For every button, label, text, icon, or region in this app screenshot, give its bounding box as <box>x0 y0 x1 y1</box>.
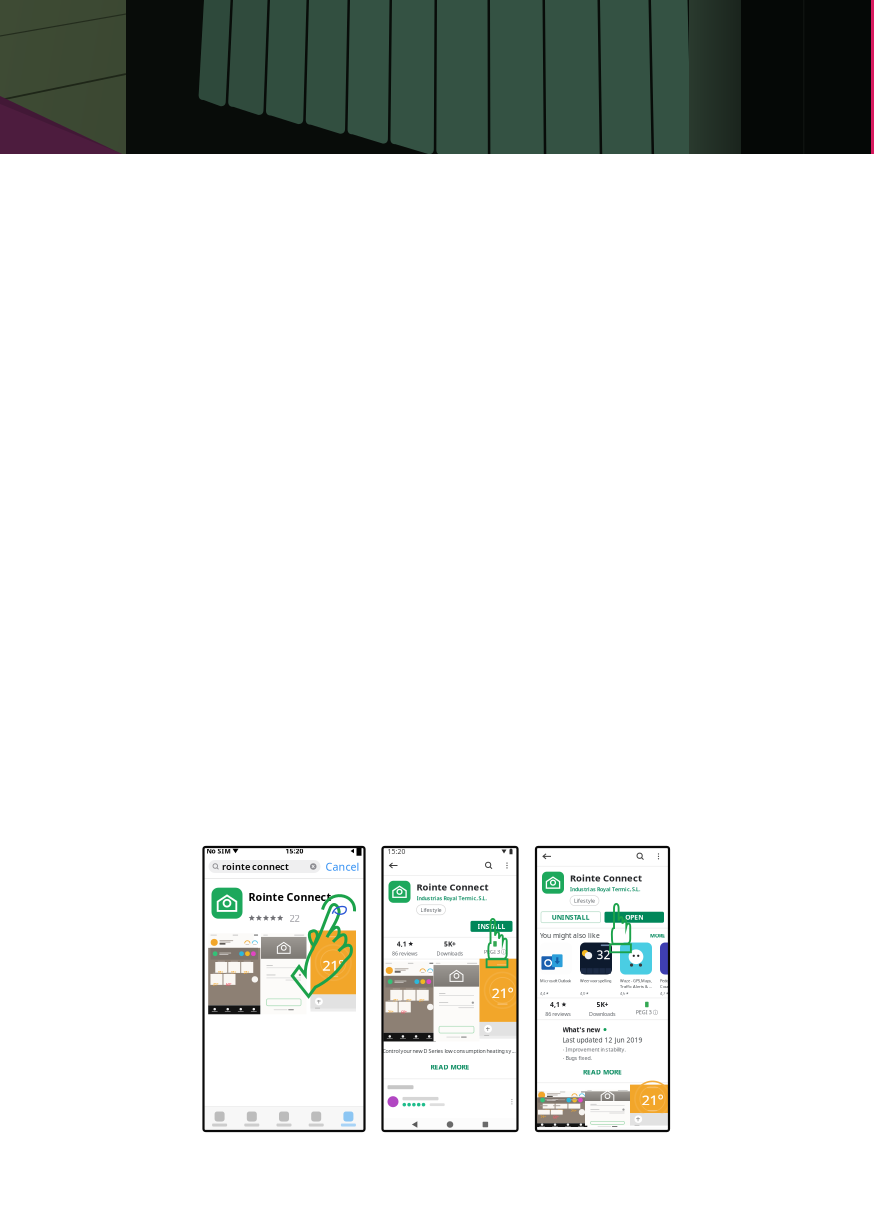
button[interactable]: READ MORE <box>430 1062 469 1071</box>
staticText: 4,7 <box>660 991 665 996</box>
staticText: 4,4 <box>540 991 545 996</box>
staticText: × <box>311 862 315 871</box>
staticText: OPEN <box>625 913 643 922</box>
staticText: 4,0 <box>580 991 585 996</box>
staticText: READ MORE <box>583 1067 622 1076</box>
staticText: 21° <box>571 1108 577 1113</box>
staticText: 86 reviews <box>545 1010 571 1018</box>
staticText: 21° <box>540 1114 546 1119</box>
button[interactable]: Tab 5 <box>332 1107 364 1131</box>
staticText: 21° <box>230 970 236 975</box>
button[interactable]: INSTALL <box>470 921 512 932</box>
staticText: No SIM <box>206 847 230 855</box>
staticText: 86 reviews <box>392 950 418 957</box>
staticText: MORE <box>650 932 665 939</box>
staticText: 21° <box>322 955 344 975</box>
staticText: 21° <box>558 1108 564 1113</box>
staticText: 5K+ <box>596 1000 608 1009</box>
staticText: Rointe Connect <box>570 872 642 884</box>
button[interactable]: OPEN <box>604 912 664 923</box>
staticText: Downloads <box>589 1010 616 1018</box>
staticText: Last updated 12 Jun 2019 <box>562 1035 642 1044</box>
staticText: 15:20 <box>387 847 405 856</box>
staticText: 60° <box>401 1009 407 1014</box>
button[interactable]: Tab 3 <box>268 1107 300 1131</box>
staticText: 21° <box>243 970 249 975</box>
staticText: 5K+ <box>444 939 456 948</box>
staticText: + <box>636 1114 641 1124</box>
staticText: Industrias Royal Termic, S.L. <box>416 895 486 902</box>
staticText: 15:27 <box>541 838 559 847</box>
staticText: 60° <box>226 982 232 987</box>
button[interactable]: More options <box>501 859 512 871</box>
button[interactable]: Tab 2 <box>236 1107 268 1131</box>
staticText: 60° <box>553 1114 559 1119</box>
button[interactable]: Cancel <box>325 859 359 874</box>
staticText: 32 <box>596 947 610 963</box>
button[interactable]: Home <box>599 1130 606 1137</box>
staticText: - Bugs fixed. <box>562 1054 591 1061</box>
staticText: 21° <box>388 1009 394 1014</box>
button[interactable]: Recents <box>635 1131 640 1136</box>
staticText: Microsoft Outlook <box>540 978 571 983</box>
staticText: + <box>485 1023 490 1034</box>
staticText: Coun <box>660 984 669 989</box>
staticText: + <box>316 996 321 1007</box>
staticText: 21° <box>419 997 425 1003</box>
staticText: UNINSTALL <box>552 913 590 922</box>
staticText: PEGI 3 ⓘ <box>636 1009 658 1016</box>
staticText: PEGI 3 ⓘ <box>484 948 506 955</box>
staticText: 4,1 <box>397 939 407 948</box>
button[interactable]: Back <box>412 1121 417 1128</box>
staticText: Rointe Connect <box>248 890 331 904</box>
staticText: 21° <box>491 983 513 1002</box>
staticText: - Improvement in stability. <box>562 1046 625 1053</box>
staticText: 4,1 <box>550 1000 560 1009</box>
staticText: 21° <box>393 997 399 1003</box>
staticText: Pedo <box>660 978 668 983</box>
staticText: rointe connect <box>222 860 289 873</box>
staticText: INSTALL <box>477 922 505 931</box>
staticText: 4,6 <box>620 991 625 996</box>
staticText: 21° <box>641 1090 663 1110</box>
staticText: 21° <box>213 982 219 987</box>
staticText: Lifestyle <box>574 897 595 904</box>
staticText: Weervoorspelling <box>580 978 611 983</box>
button[interactable]: MORE <box>650 932 665 939</box>
staticText: 21° <box>406 997 412 1003</box>
staticText: READ MORE <box>430 1062 469 1071</box>
button[interactable]: Tab 1 <box>203 1107 236 1131</box>
staticText: What's new <box>562 1025 600 1034</box>
button[interactable]: More options <box>653 850 664 862</box>
button[interactable]: Home <box>447 1121 453 1128</box>
button[interactable]: Back <box>387 859 399 871</box>
staticText: Industrias Royal Termic, S.L. <box>570 886 640 893</box>
staticText: You might also like <box>540 931 600 940</box>
staticText: Cancel <box>325 859 359 874</box>
staticText: 15:20 <box>285 847 303 855</box>
button[interactable]: READ MORE <box>583 1067 622 1076</box>
staticText: Traffic Alerts & Li… <box>620 984 652 989</box>
staticText: Control your new D Series low consumptio… <box>382 1047 517 1055</box>
staticText: Downloads <box>436 950 463 957</box>
staticText: 21° <box>545 1108 551 1113</box>
staticText: Rointe Connect <box>416 881 488 893</box>
staticText: Waze - GPS,Maps, <box>620 978 652 983</box>
button[interactable]: Tab 4 <box>300 1107 332 1131</box>
button[interactable]: UNINSTALL <box>541 912 600 923</box>
staticText: Lifestyle <box>420 906 441 913</box>
staticText: 21° <box>217 970 223 975</box>
staticText: 22 <box>290 912 300 924</box>
button[interactable]: Search <box>634 851 646 862</box>
button[interactable]: Back <box>565 1130 570 1137</box>
button[interactable]: Search <box>483 860 494 871</box>
button[interactable]: Back <box>541 850 553 862</box>
